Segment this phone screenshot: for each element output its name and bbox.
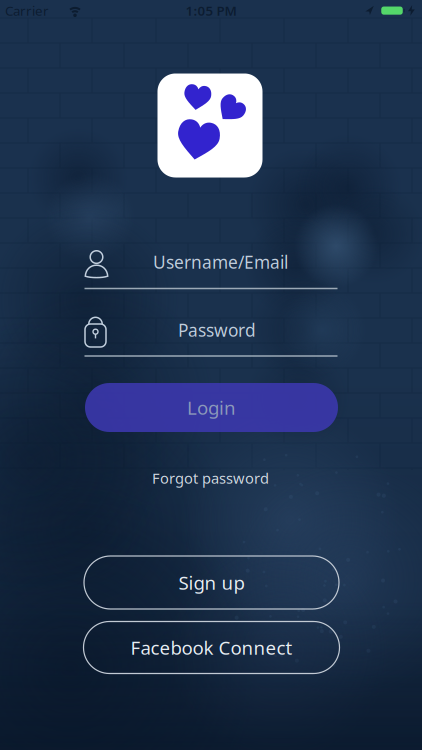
button[interactable]: Login: [85, 383, 338, 432]
button[interactable]: Sign up: [84, 556, 339, 609]
staticText: Sign up: [178, 570, 244, 595]
staticText: Facebook Connect: [130, 635, 292, 660]
staticText: Password: [178, 318, 256, 341]
staticText: Login: [187, 395, 236, 420]
button[interactable]: Username/Email: [0, 240, 422, 296]
button[interactable]: Password: [0, 310, 422, 362]
button[interactable]: Facebook Connect: [83, 621, 339, 673]
staticText: 1:05 PM: [185, 2, 236, 19]
staticText: Carrier: [5, 2, 49, 19]
button[interactable]: Forgot password: [130, 464, 290, 492]
staticText: Username/Email: [153, 250, 288, 273]
staticText: Forgot password: [152, 468, 269, 488]
